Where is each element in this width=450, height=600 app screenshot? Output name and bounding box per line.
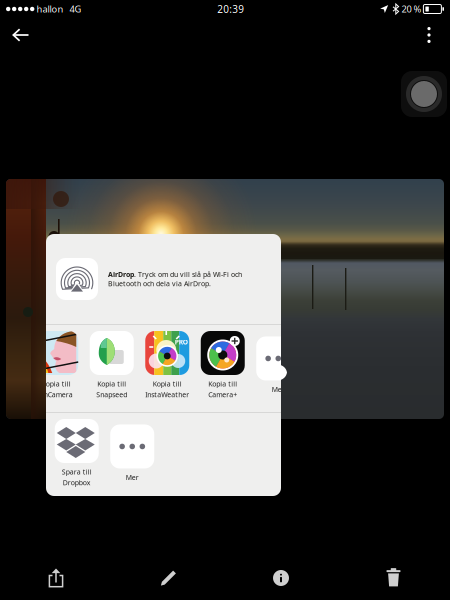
button[interactable]: AirDrop. Tryck om du vill slå på Wi-Fi o… bbox=[46, 234, 281, 324]
staticText: Kopia till bbox=[153, 379, 182, 388]
button[interactable]: Back bbox=[0, 18, 42, 52]
staticText: PRO bbox=[175, 337, 188, 347]
button[interactable]: Edit bbox=[112, 556, 225, 600]
staticText: InstaWeather bbox=[145, 390, 189, 399]
staticText: AirDrop. Tryck om du vill slå på Wi-Fi o… bbox=[108, 270, 242, 288]
button[interactable]: PRO bbox=[139, 331, 195, 399]
staticText: 20:39 bbox=[217, 2, 244, 16]
button[interactable]: Mer bbox=[250, 336, 306, 394]
button[interactable]: Mer bbox=[104, 424, 160, 482]
button[interactable]: Info bbox=[225, 556, 337, 600]
button[interactable]: Delete bbox=[337, 556, 450, 600]
button[interactable]: Kopia till bbox=[28, 331, 84, 399]
button[interactable]: More options bbox=[408, 18, 450, 52]
staticText: Camera+ bbox=[208, 390, 237, 399]
staticText: Spara till bbox=[62, 467, 92, 476]
staticText: Mer bbox=[126, 472, 139, 482]
button[interactable]: Share bbox=[0, 556, 112, 600]
button[interactable]: Kopia till bbox=[195, 331, 250, 399]
staticText: 20 % bbox=[399, 3, 423, 15]
staticText: Kopia till bbox=[42, 379, 71, 388]
staticText: Snapseed bbox=[96, 390, 127, 399]
button[interactable]: Kopia till bbox=[84, 331, 139, 399]
staticText: Dropbox bbox=[63, 478, 91, 487]
staticText: Kopia till bbox=[208, 379, 237, 388]
staticText: Mer bbox=[272, 384, 285, 394]
staticText: Kopia till bbox=[97, 379, 126, 388]
button[interactable]: Spara till bbox=[49, 419, 104, 487]
staticText: onCamera bbox=[40, 390, 73, 399]
staticText: hallon 4G bbox=[34, 3, 81, 15]
